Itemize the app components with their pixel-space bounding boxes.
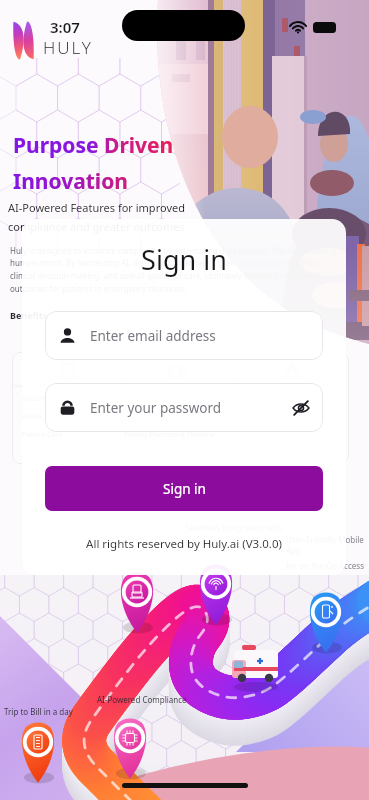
staticText: Innovation [13,167,128,196]
other: Wi-Fi [290,21,306,33]
staticText: compliance and greater outcomes [8,219,185,234]
button[interactable]: Sign in [45,466,323,511]
staticText: Benefits [10,309,48,321]
staticText: Enter your password [90,399,222,417]
staticText: All rights reserved by Huly.ai (V3.0.0) [22,536,346,552]
staticText: & insights [185,537,223,548]
button[interactable]: Enter email address [45,311,323,360]
staticText: AI-Powered Features for improved [8,200,185,215]
staticText: HIPAA Compliance [22,412,83,422]
staticText: Sign in [22,241,346,278]
staticText: Huly is designed to enhance compliance b… [10,245,347,295]
button[interactable]: Show password [292,399,310,417]
staticText: Patient Care [22,430,63,440]
staticText: 3:07 [50,17,80,37]
staticText: Sign in [163,480,206,498]
staticText: Purpose Driven [13,131,174,160]
staticText: Enter email address [90,327,216,345]
staticText: Document Quality [22,394,82,404]
staticText: QA time saved (80-90%) [124,412,202,422]
staticText: Claim Rejection Rate(50%) [236,412,322,422]
staticText: HULY [43,36,93,59]
staticText: AI-Powered Compliance [97,694,187,705]
button[interactable]: Enter your password [45,383,323,432]
staticText: Coding Processing Timeline [124,430,215,440]
staticText: Trip to Bill in a day [4,706,73,717]
staticText: for on-the-Go Access [286,560,364,571]
staticText: User-Friendly Mobile App [286,534,369,556]
